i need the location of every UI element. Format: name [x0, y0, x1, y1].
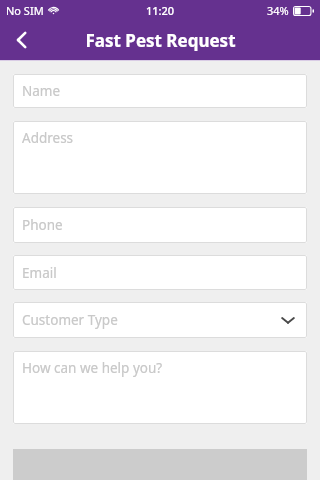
- staticText: 11:20: [146, 3, 175, 18]
- button[interactable]: Address: [13, 121, 307, 194]
- staticText: How can we help you?: [22, 359, 163, 377]
- button[interactable]: How can we help you?: [13, 351, 307, 424]
- button[interactable]: Email: [13, 255, 307, 290]
- staticText: 34%: [267, 3, 289, 18]
- staticText: Phone: [22, 216, 63, 234]
- staticText: Name: [22, 82, 61, 100]
- button[interactable]: Customer Type: [13, 302, 307, 338]
- staticText: Address: [22, 129, 74, 147]
- staticText: No SIM: [6, 3, 44, 18]
- button[interactable]: Phone: [13, 207, 307, 243]
- button[interactable]: Back: [0, 20, 44, 60]
- staticText: Fast Pest Request: [85, 29, 236, 52]
- staticText: Email: [22, 264, 57, 282]
- button[interactable]: Name: [13, 74, 307, 108]
- staticText: Customer Type: [22, 311, 118, 329]
